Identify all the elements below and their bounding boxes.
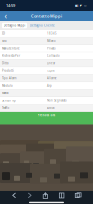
button[interactable]: Back (2, 11, 9, 21)
button[interactable]: Tabs (75, 192, 82, 199)
staticText: ID (2, 32, 5, 35)
staticText: Contatto Mippi (31, 13, 62, 19)
button[interactable]: Forward (27, 192, 33, 199)
staticText: Ditta (2, 61, 8, 65)
staticText: Non Segnalato (47, 99, 67, 102)
button[interactable]: Dettaglio Cliente (28, 23, 56, 28)
staticText: T-Q36 (47, 69, 55, 72)
staticText: Linear (47, 61, 55, 65)
staticText: Dettaglio Mippi (3, 24, 25, 27)
staticText: Manutentore (2, 47, 20, 50)
staticText: ‹ (4, 11, 6, 21)
staticText: Sito (2, 39, 7, 43)
button[interactable]: Prenota ora (0, 112, 93, 125)
staticText: 14:59 (6, 3, 15, 8)
button[interactable]: Bookmarks (58, 192, 65, 199)
button[interactable]: Share (42, 192, 49, 199)
staticText: Attivo (47, 106, 55, 110)
button[interactable]: Back (11, 192, 17, 199)
button[interactable]: Dettaglio Mippi (2, 23, 27, 28)
staticText: 18345 (47, 32, 57, 35)
staticText: Prenota ora (37, 113, 55, 117)
staticText: Tipo Alarm (2, 76, 16, 80)
staticText: Privato (47, 47, 56, 50)
staticText: ▮▮▯ ◤ ▭ (75, 4, 87, 7)
staticText: Arp (47, 84, 52, 87)
staticText: Traffic (2, 106, 9, 110)
staticText: Modulo (2, 84, 13, 87)
staticText: Richiesta Per (2, 54, 20, 58)
staticText: Prodotti (2, 69, 14, 72)
staticText: Allarme (47, 76, 57, 80)
staticText: Dettaglio Cliente (30, 24, 55, 27)
staticText: Sensor Tip (2, 99, 16, 102)
staticText: Marca (2, 91, 8, 95)
staticText: Milano (47, 39, 56, 43)
staticText: Collaudo (47, 54, 60, 58)
